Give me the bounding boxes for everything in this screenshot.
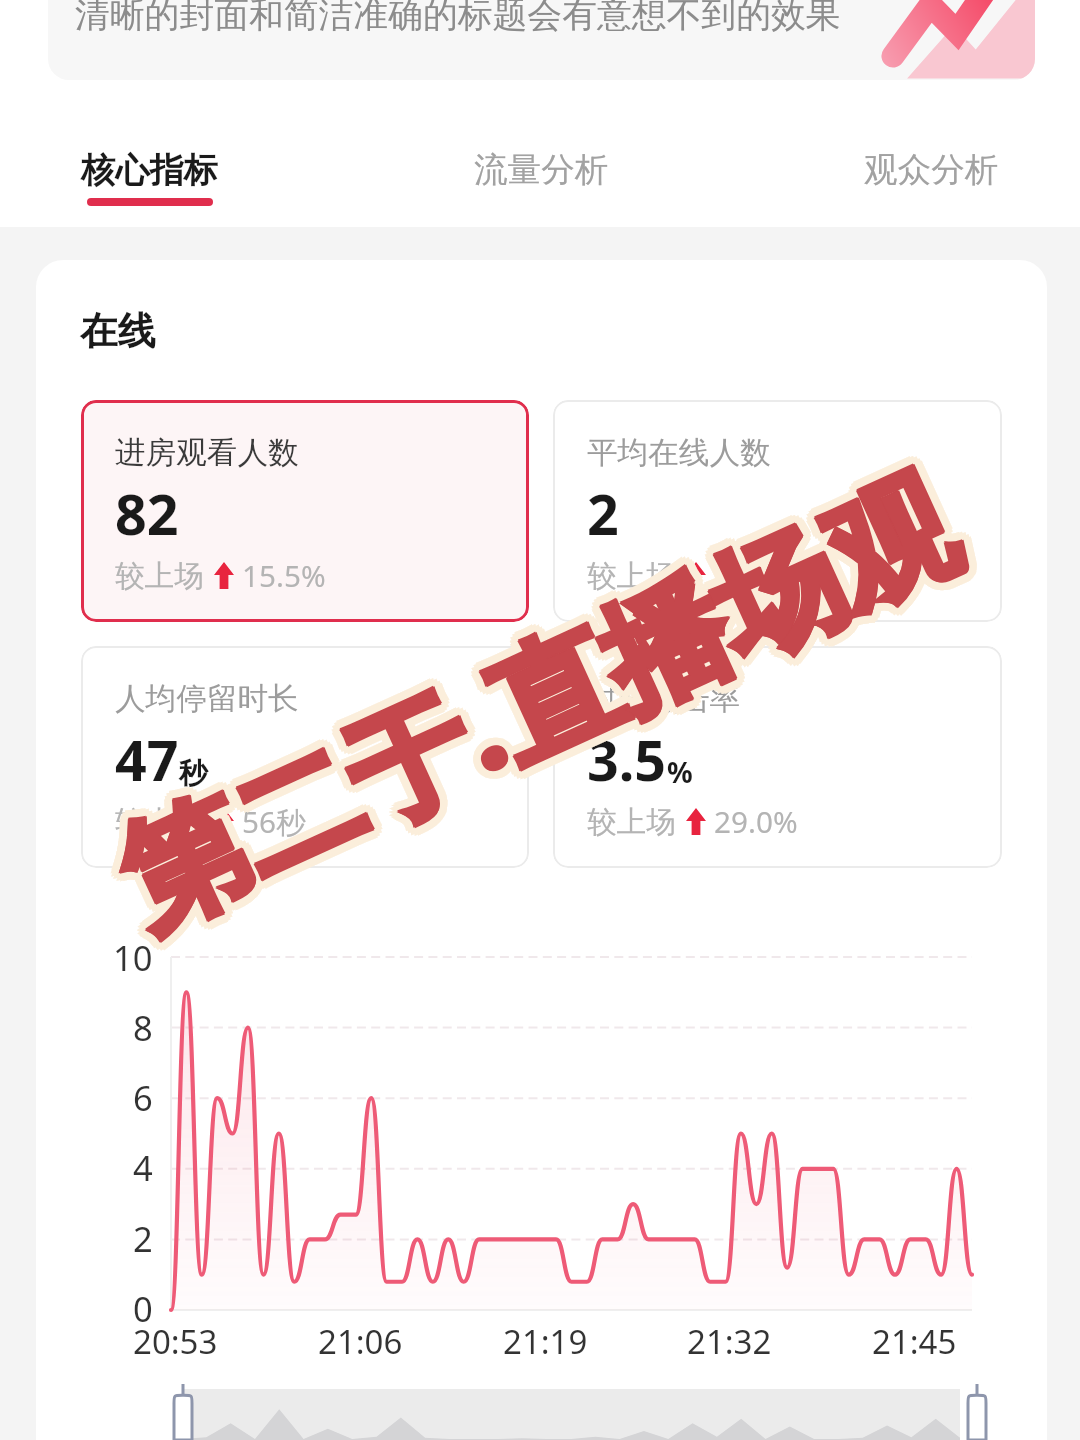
staticText: 2	[133, 1215, 153, 1262]
staticText: 第二于.直播场观	[99, 430, 984, 955]
staticText: 2	[587, 476, 619, 552]
staticText: 56秒	[242, 801, 306, 842]
button[interactable]: 核心指标	[51, 149, 248, 227]
staticText: 18.0%	[714, 555, 798, 595]
staticText: 第二于.直播场观	[84, 440, 970, 965]
staticText: %	[667, 753, 693, 792]
staticText: 21:45	[872, 1319, 957, 1364]
staticText: 8	[133, 1004, 153, 1051]
staticText: 第二于.直播场观	[92, 437, 978, 961]
staticText: 秒	[179, 756, 208, 792]
staticText: 第二于.直播场观	[86, 430, 972, 955]
staticText: 第二于.直播场观	[84, 437, 970, 962]
staticText: 清晰的封面和简洁准确的标题会有意想不到的效果	[75, 0, 841, 37]
staticText: 平均在线人数	[587, 434, 771, 473]
staticText: 第二于.直播场观	[90, 444, 975, 969]
staticText: 较上场	[587, 557, 677, 594]
button[interactable]: 流量分析	[444, 149, 639, 227]
staticText: 第二于.直播场观	[95, 429, 981, 953]
staticText: 进房观看人数	[115, 434, 299, 473]
staticText: 10	[113, 934, 153, 981]
staticText: 6	[133, 1074, 153, 1121]
staticText: 较上场	[115, 803, 205, 840]
button[interactable]: 清晰的封面和简洁准确的标题会有意想不到的效果	[48, 0, 1035, 80]
staticText: 较上场	[115, 557, 205, 594]
staticText: 第二于.直播场观	[92, 436, 978, 961]
button[interactable]: 观众分析	[834, 149, 1029, 227]
button[interactable]: Range handle	[174, 1384, 192, 1440]
button[interactable]: 封面点击率	[553, 646, 1002, 868]
staticText: 第二于.直播场观	[96, 445, 982, 970]
staticText: 第二于.直播场观	[89, 428, 975, 953]
staticText: 观众分析	[864, 149, 999, 191]
button[interactable]: 平均在线人数	[553, 400, 1002, 622]
button[interactable]: 进房观看人数	[81, 400, 529, 622]
staticText: 82	[115, 476, 179, 552]
staticText: 21:32	[687, 1319, 772, 1364]
staticText: 21:06	[318, 1319, 403, 1364]
staticText: 4	[133, 1144, 153, 1191]
staticText: 21:19	[503, 1319, 588, 1364]
staticText: 第二于.直播场观	[85, 434, 970, 958]
button[interactable]: 人均停留时长	[81, 646, 529, 868]
staticText: 0	[133, 1285, 153, 1332]
staticText: 第二于.直播场观	[92, 437, 977, 962]
staticText: 第二于.直播场观	[93, 445, 979, 970]
staticText: 第二于.直播场观	[100, 439, 986, 964]
staticText: 第二于.直播场观	[93, 437, 979, 962]
staticText: 人均停留时长	[115, 680, 299, 719]
staticText: 封面点击率	[587, 680, 740, 719]
staticText: 第二于.直播场观	[92, 428, 978, 953]
staticText: 47	[115, 722, 179, 798]
staticText: 流量分析	[474, 149, 609, 191]
staticText: 第二于.直播场观	[86, 443, 972, 967]
staticText: 核心指标	[81, 149, 218, 192]
button[interactable]: Range handle	[968, 1384, 986, 1440]
staticText: 3.5	[587, 722, 667, 798]
staticText: 29.0%	[714, 801, 798, 841]
staticText: 第二于.直播场观	[93, 436, 979, 961]
staticText: 第二于.直播场观	[101, 436, 987, 961]
staticText: 15.5%	[242, 555, 326, 595]
staticText: 第二于.直播场观	[101, 433, 987, 958]
staticText: 较上场	[587, 803, 677, 840]
staticText: 在线	[80, 308, 156, 356]
staticText: 第二于.直播场观	[99, 443, 984, 967]
staticText: 20:53	[133, 1319, 218, 1364]
